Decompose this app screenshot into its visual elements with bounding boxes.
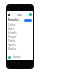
staticText: Shops — [8, 35, 17, 39]
button[interactable]: Bars — [7, 27, 33, 31]
button[interactable]: Banks — [7, 47, 33, 51]
staticText: Results — [8, 18, 19, 22]
button[interactable] — [24, 19, 32, 22]
button[interactable]: Hotels — [7, 31, 33, 35]
button[interactable]: Parks — [7, 39, 33, 43]
staticText: Cafes — [8, 23, 16, 27]
staticText: Gyms — [8, 43, 16, 47]
button[interactable]: Gyms — [7, 43, 33, 47]
button[interactable]: Shops — [7, 35, 33, 39]
staticText: Parks — [8, 39, 16, 43]
button[interactable]: Profile — [29, 13, 32, 16]
button[interactable]: Cafes — [7, 23, 33, 27]
staticText: Hotels — [8, 31, 17, 35]
button[interactable]: Home — [8, 56, 11, 59]
button[interactable]: Search — [17, 14, 22, 16]
staticText: Banks — [8, 47, 17, 51]
staticText: Bars — [8, 27, 15, 31]
staticText: Saved — [13, 55, 21, 59]
